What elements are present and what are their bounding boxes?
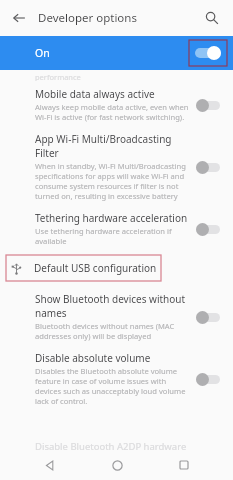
button[interactable]: Mobile data always active <box>0 87 233 122</box>
staticText: names <box>35 306 67 320</box>
staticText: addresses only) will be displayed <box>35 331 152 341</box>
staticText: performance <box>35 72 81 81</box>
staticText: available <box>35 236 67 246</box>
button[interactable]: On <box>0 36 233 70</box>
button[interactable]: App Wi-Fi Multi/Broadcasting <box>0 132 233 201</box>
staticText: Disables the Bluetooth absolute volume <box>35 366 178 376</box>
button[interactable]: Recent apps <box>166 450 202 480</box>
staticText: Show Bluetooth devices without <box>35 292 186 306</box>
button[interactable]: Home <box>99 450 135 480</box>
button[interactable]: Back <box>31 450 67 480</box>
button[interactable]: Disable absolute volume <box>195 370 221 388</box>
button[interactable]: App Wi-Fi Multi/Broadcasting Filter <box>195 158 221 176</box>
button[interactable]: performance <box>0 72 233 81</box>
staticText: Tethering hardware acceleration <box>35 211 188 225</box>
staticText: Mobile data always active <box>35 87 155 101</box>
staticText: Filter <box>35 146 59 160</box>
staticText: On <box>35 46 50 60</box>
button[interactable]: Back <box>6 5 32 31</box>
staticText: Use tethering hardware acceleration if <box>35 226 172 236</box>
staticText: Bluetooth devices without names (MAC <box>35 321 175 331</box>
button[interactable]: Search <box>199 5 225 31</box>
staticText: feature in case of volume issues with re… <box>35 376 189 386</box>
button[interactable]: Tethering hardware acceleration <box>0 211 233 246</box>
staticText: Disable Bluetooth A2DP hardware <box>35 440 187 450</box>
staticText: Always keep mobile data active, even whe… <box>35 102 189 112</box>
staticText: When in standby, Wi-Fi Multi/Broadcastin… <box>35 161 186 171</box>
button[interactable]: Show Bluetooth devices without names <box>195 308 221 326</box>
staticText: Developer options <box>38 10 137 26</box>
button[interactable]: Disable Bluetooth A2DP hardware <box>0 440 233 450</box>
button[interactable]: Default USB configuration <box>0 254 233 282</box>
staticText: App Wi-Fi Multi/Broadcasting <box>35 132 172 146</box>
button[interactable]: Developer options on <box>194 45 222 61</box>
staticText: Disable absolute volume <box>35 351 151 365</box>
button[interactable]: Disable absolute volume <box>0 351 233 406</box>
button[interactable]: Mobile data always active <box>195 96 221 114</box>
staticText: Default USB configuration <box>34 261 157 275</box>
button[interactable]: Tethering hardware acceleration <box>195 220 221 238</box>
staticText: devices such as unacceptably loud volume… <box>35 386 189 396</box>
staticText: specifications for apps will wake Wi-Fi … <box>35 171 185 181</box>
staticText: turned on, resulting in excessive batter… <box>35 191 189 201</box>
staticText: consume system resources if filter is no… <box>35 181 179 191</box>
staticText: lack of control. <box>35 396 88 406</box>
staticText: Wi-Fi is active (for fast network switch… <box>35 112 185 122</box>
button[interactable]: Show Bluetooth devices without <box>0 292 233 341</box>
